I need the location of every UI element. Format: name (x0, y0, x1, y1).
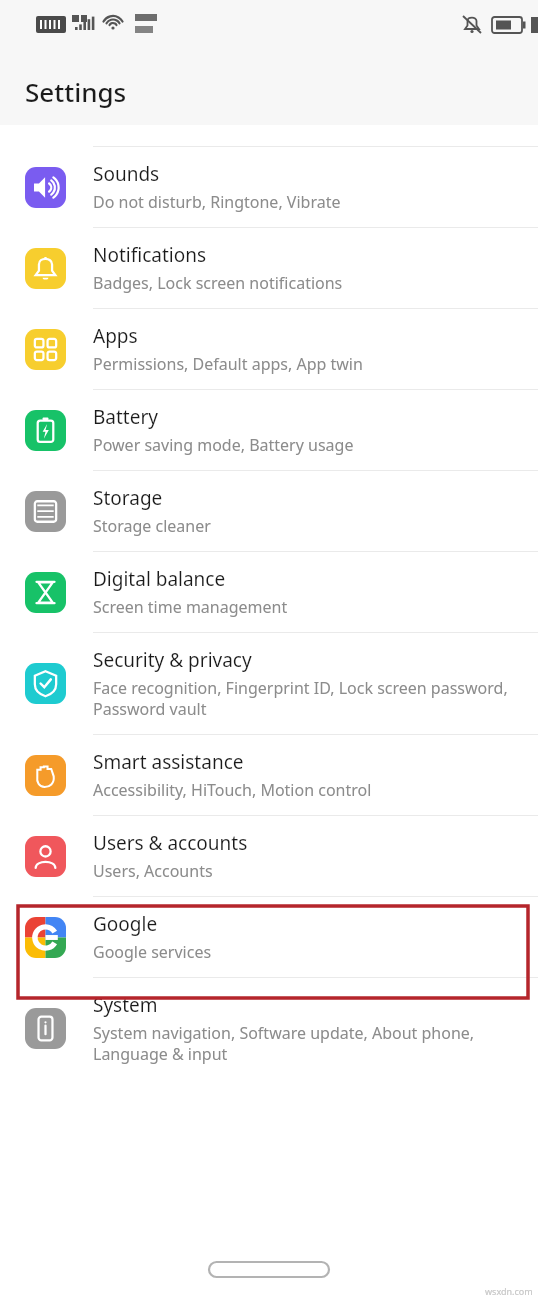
button[interactable]: Battery (0, 390, 538, 470)
button[interactable]: Notifications (0, 228, 538, 308)
staticText: Screen time management (93, 596, 288, 618)
button[interactable]: Google (0, 897, 538, 977)
button[interactable]: Apps (0, 309, 538, 389)
staticText: Google (93, 911, 158, 937)
staticText: Power saving mode, Battery usage (93, 434, 354, 456)
staticText: Accessibility, HiTouch, Motion control (93, 779, 372, 801)
staticText: Badges, Lock screen notifications (93, 272, 343, 294)
button[interactable]: Sounds (0, 147, 538, 227)
button[interactable]: System (0, 978, 538, 1079)
staticText: Google services (93, 941, 212, 963)
button[interactable]: Users & accounts (0, 816, 538, 896)
staticText: System navigation, Software update, Abou… (93, 1022, 520, 1065)
staticText: Digital balance (93, 566, 226, 592)
staticText: Battery (93, 404, 158, 430)
staticText: Apps (93, 323, 138, 349)
staticText: Sounds (93, 161, 160, 187)
staticText: Notifications (93, 242, 207, 268)
staticText: Do not disturb, Ringtone, Vibrate (93, 191, 341, 213)
staticText: System (93, 992, 158, 1018)
staticText: Settings (25, 74, 127, 109)
button[interactable]: Digital balance (0, 552, 538, 632)
staticText: Storage (93, 485, 163, 511)
staticText: Storage cleaner (93, 515, 211, 537)
button[interactable]: Security & privacy (0, 633, 538, 734)
staticText: Users, Accounts (93, 860, 213, 882)
staticText: Smart assistance (93, 749, 244, 775)
staticText: Face recognition, Fingerprint ID, Lock s… (93, 677, 520, 720)
staticText: Permissions, Default apps, App twin (93, 353, 363, 375)
button[interactable]: Smart assistance (0, 735, 538, 815)
staticText: Users & accounts (93, 830, 248, 856)
button[interactable]: Storage (0, 471, 538, 551)
staticText: Security & privacy (93, 647, 252, 673)
staticText: wsxdn.com (485, 1285, 533, 1297)
